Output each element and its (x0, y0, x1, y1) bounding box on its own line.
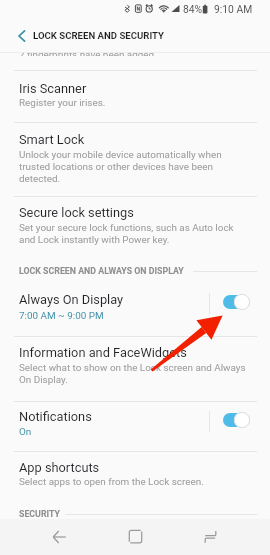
staticText: Smart Lock (19, 132, 85, 147)
staticText: 7:00 AM ~ 9:00 PM (19, 310, 104, 322)
button[interactable]: Home (98, 519, 173, 555)
button[interactable] (0, 282, 270, 326)
staticText: 84% (183, 3, 203, 15)
staticText: SECURITY (19, 509, 60, 519)
staticText: App shortcuts (19, 460, 100, 475)
button[interactable]: Toggle Notifications (219, 409, 253, 431)
staticText: On Display. (19, 374, 68, 386)
staticText: 2 fingerprints have been added. (19, 53, 157, 56)
staticText: LOCK SCREEN AND SECURITY (33, 30, 165, 41)
staticText: and Lock instantly with Power key. (19, 234, 170, 246)
button[interactable]: Toggle Always On Display (219, 291, 253, 313)
staticText: Secure lock settings (19, 205, 134, 220)
staticText: LOCK SCREEN AND ALWAYS ON DISPLAY (19, 266, 184, 276)
button[interactable] (0, 400, 270, 444)
staticText: Select apps to open from the Lock screen… (19, 476, 204, 488)
staticText: Unlock your mobile device automatically … (19, 149, 222, 161)
staticText: Always On Display (19, 292, 124, 307)
staticText: On (19, 426, 32, 438)
button[interactable]: Back (22, 519, 97, 555)
staticText: Register your irises. (19, 97, 106, 109)
button[interactable] (0, 450, 270, 555)
button[interactable] (0, 196, 270, 450)
staticText: 9:10 AM (214, 3, 253, 15)
staticText: Information and FaceWidgets (19, 345, 187, 360)
staticText: Iris Scanner (19, 81, 87, 96)
button[interactable]: Navigate up (8, 22, 36, 50)
button[interactable] (0, 123, 270, 316)
staticText: Notifications (19, 409, 92, 424)
button[interactable]: Recent apps (173, 519, 248, 555)
staticText: trusted locations or other devices have … (19, 161, 214, 173)
staticText: Set your secure lock functions, such as … (19, 222, 234, 234)
staticText: Select what to show on the Lock screen a… (19, 362, 246, 374)
staticText: detected. (19, 173, 61, 185)
button[interactable] (0, 71, 270, 189)
button[interactable] (0, 335, 270, 555)
